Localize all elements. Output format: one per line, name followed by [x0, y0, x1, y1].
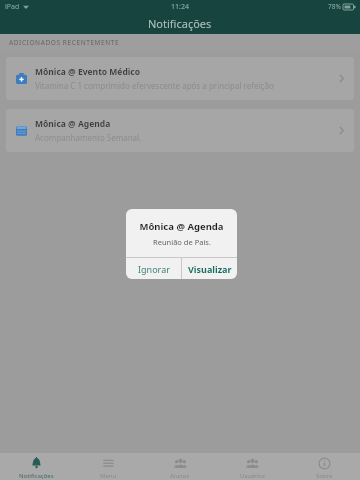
staticText: 11:24: [171, 2, 189, 12]
staticText: Reunião de Pais.: [153, 237, 211, 247]
staticText: iPad: [5, 2, 20, 12]
button[interactable]: Mônica @ Evento Médico: [6, 57, 354, 100]
staticText: Mônica @ Evento Médico: [35, 66, 141, 78]
staticText: Alunos: [170, 472, 190, 480]
staticText: Sobre: [316, 472, 333, 480]
button[interactable]: Mônica @ Agenda: [6, 109, 354, 152]
button[interactable]: Visualizar: [182, 258, 237, 279]
staticText: Mônica @ Agenda: [139, 220, 224, 233]
staticText: Notificações: [19, 472, 54, 480]
staticText: Menu: [100, 472, 117, 480]
button[interactable]: Usuários: [216, 453, 288, 480]
button[interactable]: Notificações: [0, 453, 72, 480]
staticText: Vitamina C 1 comprimido efervescente apó…: [35, 80, 274, 91]
staticText: Acompanhamento Semanal.: [35, 132, 142, 143]
button[interactable]: Sobre: [288, 453, 360, 480]
staticText: ADICIONADOS RECENTEMENTE: [9, 38, 120, 47]
button[interactable]: Ignorar: [126, 258, 181, 279]
button[interactable]: Alunos: [144, 453, 216, 480]
staticText: Visualizar: [188, 263, 232, 275]
staticText: 78%: [328, 2, 341, 11]
staticText: Ignorar: [138, 263, 170, 275]
staticText: Mônica @ Agenda: [35, 118, 111, 130]
button[interactable]: Menu: [72, 453, 144, 480]
staticText: Notificações: [148, 16, 212, 31]
staticText: Usuários: [240, 472, 265, 480]
